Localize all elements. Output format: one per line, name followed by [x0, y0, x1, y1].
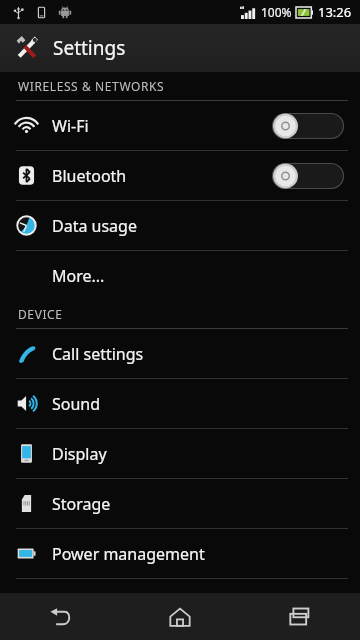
- button[interactable]: Recent apps: [240, 593, 360, 640]
- staticText: DEVICE: [18, 306, 63, 322]
- button[interactable]: More...: [0, 251, 360, 300]
- staticText: Sound: [52, 393, 344, 415]
- staticText: Storage: [52, 493, 344, 515]
- button[interactable]: Storage: [0, 479, 360, 528]
- button[interactable]: Back: [0, 593, 120, 640]
- staticText: Bluetooth: [52, 165, 272, 187]
- button[interactable]: Display: [0, 429, 360, 478]
- button[interactable]: Bluetooth: [0, 151, 360, 200]
- staticText: 13:26: [318, 3, 352, 21]
- button[interactable]: Toggle: [272, 113, 344, 139]
- staticText: More...: [52, 265, 344, 287]
- button[interactable]: Call settings: [0, 329, 360, 378]
- staticText: Settings: [53, 35, 126, 61]
- staticText: WIRELESS & NETWORKS: [18, 78, 165, 94]
- button[interactable]: Wi-Fi: [0, 101, 360, 150]
- staticText: 100%: [261, 4, 292, 20]
- staticText: Data usage: [52, 215, 344, 237]
- button[interactable]: Toggle: [272, 163, 344, 189]
- button[interactable]: Data usage: [0, 201, 360, 250]
- staticText: Display: [52, 443, 344, 465]
- button[interactable]: Sound: [0, 379, 360, 428]
- button[interactable]: Settings: [0, 24, 360, 72]
- staticText: Wi-Fi: [52, 115, 272, 137]
- staticText: Call settings: [52, 343, 344, 365]
- button[interactable]: Power management: [0, 529, 360, 578]
- staticText: Power management: [52, 543, 344, 565]
- button[interactable]: Home: [120, 593, 240, 640]
